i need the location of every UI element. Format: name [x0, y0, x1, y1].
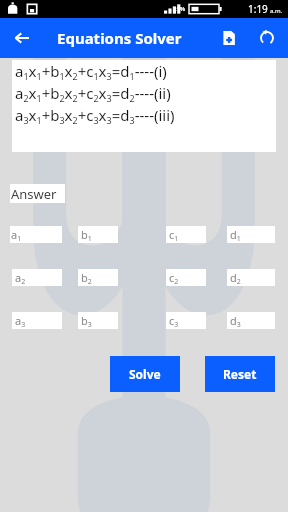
staticText: d1 [230, 227, 241, 243]
button[interactable]: b1 [78, 226, 118, 243]
button[interactable]: a3 [12, 312, 62, 329]
staticText: c1 [169, 227, 179, 243]
button[interactable]: c2 [166, 269, 206, 286]
button[interactable]: d1 [227, 226, 275, 243]
staticText: Solve [129, 366, 161, 382]
staticText: Reset [223, 366, 257, 382]
button[interactable]: b3 [78, 312, 118, 329]
staticText: 21% [173, 5, 186, 13]
staticText: d3 [230, 313, 241, 329]
staticText: c3 [169, 313, 179, 329]
staticText: 1:19 [248, 2, 268, 16]
staticText: a2x1+b2x2+c2x3=d2----(ii) [15, 83, 171, 105]
button[interactable]: Back [8, 24, 36, 52]
staticText: b1 [81, 227, 92, 243]
button[interactable]: c1 [166, 226, 206, 243]
staticText: a3 [15, 313, 26, 329]
button[interactable]: c3 [166, 312, 206, 329]
staticText: a.m. [270, 7, 283, 15]
staticText: b2 [81, 270, 92, 286]
button[interactable]: Answer [10, 184, 65, 203]
button[interactable]: Reset [252, 23, 282, 53]
staticText: a3x1+b3x2+c3x3=d3----(iii) [15, 105, 175, 127]
staticText: a2 [15, 270, 26, 286]
button[interactable]: a2 [12, 269, 62, 286]
staticText: Answer [11, 185, 57, 203]
button[interactable]: b2 [78, 269, 118, 286]
button[interactable]: Reset [205, 356, 275, 392]
button[interactable]: a1 [10, 226, 62, 243]
staticText: a1 [11, 227, 22, 243]
staticText: Equations Solver [57, 28, 182, 48]
button[interactable]: d2 [227, 269, 275, 286]
staticText: c2 [169, 270, 179, 286]
button[interactable]: New equation [214, 23, 244, 53]
staticText: a1x1+b1x2+c1x3=d1----(i) [15, 61, 167, 83]
button[interactable]: a1x1+b1x2+c1x3=d1----(i) [12, 60, 276, 152]
button[interactable]: d3 [227, 312, 275, 329]
staticText: b3 [81, 313, 92, 329]
staticText: d2 [230, 270, 241, 286]
button[interactable]: Solve [110, 356, 180, 392]
